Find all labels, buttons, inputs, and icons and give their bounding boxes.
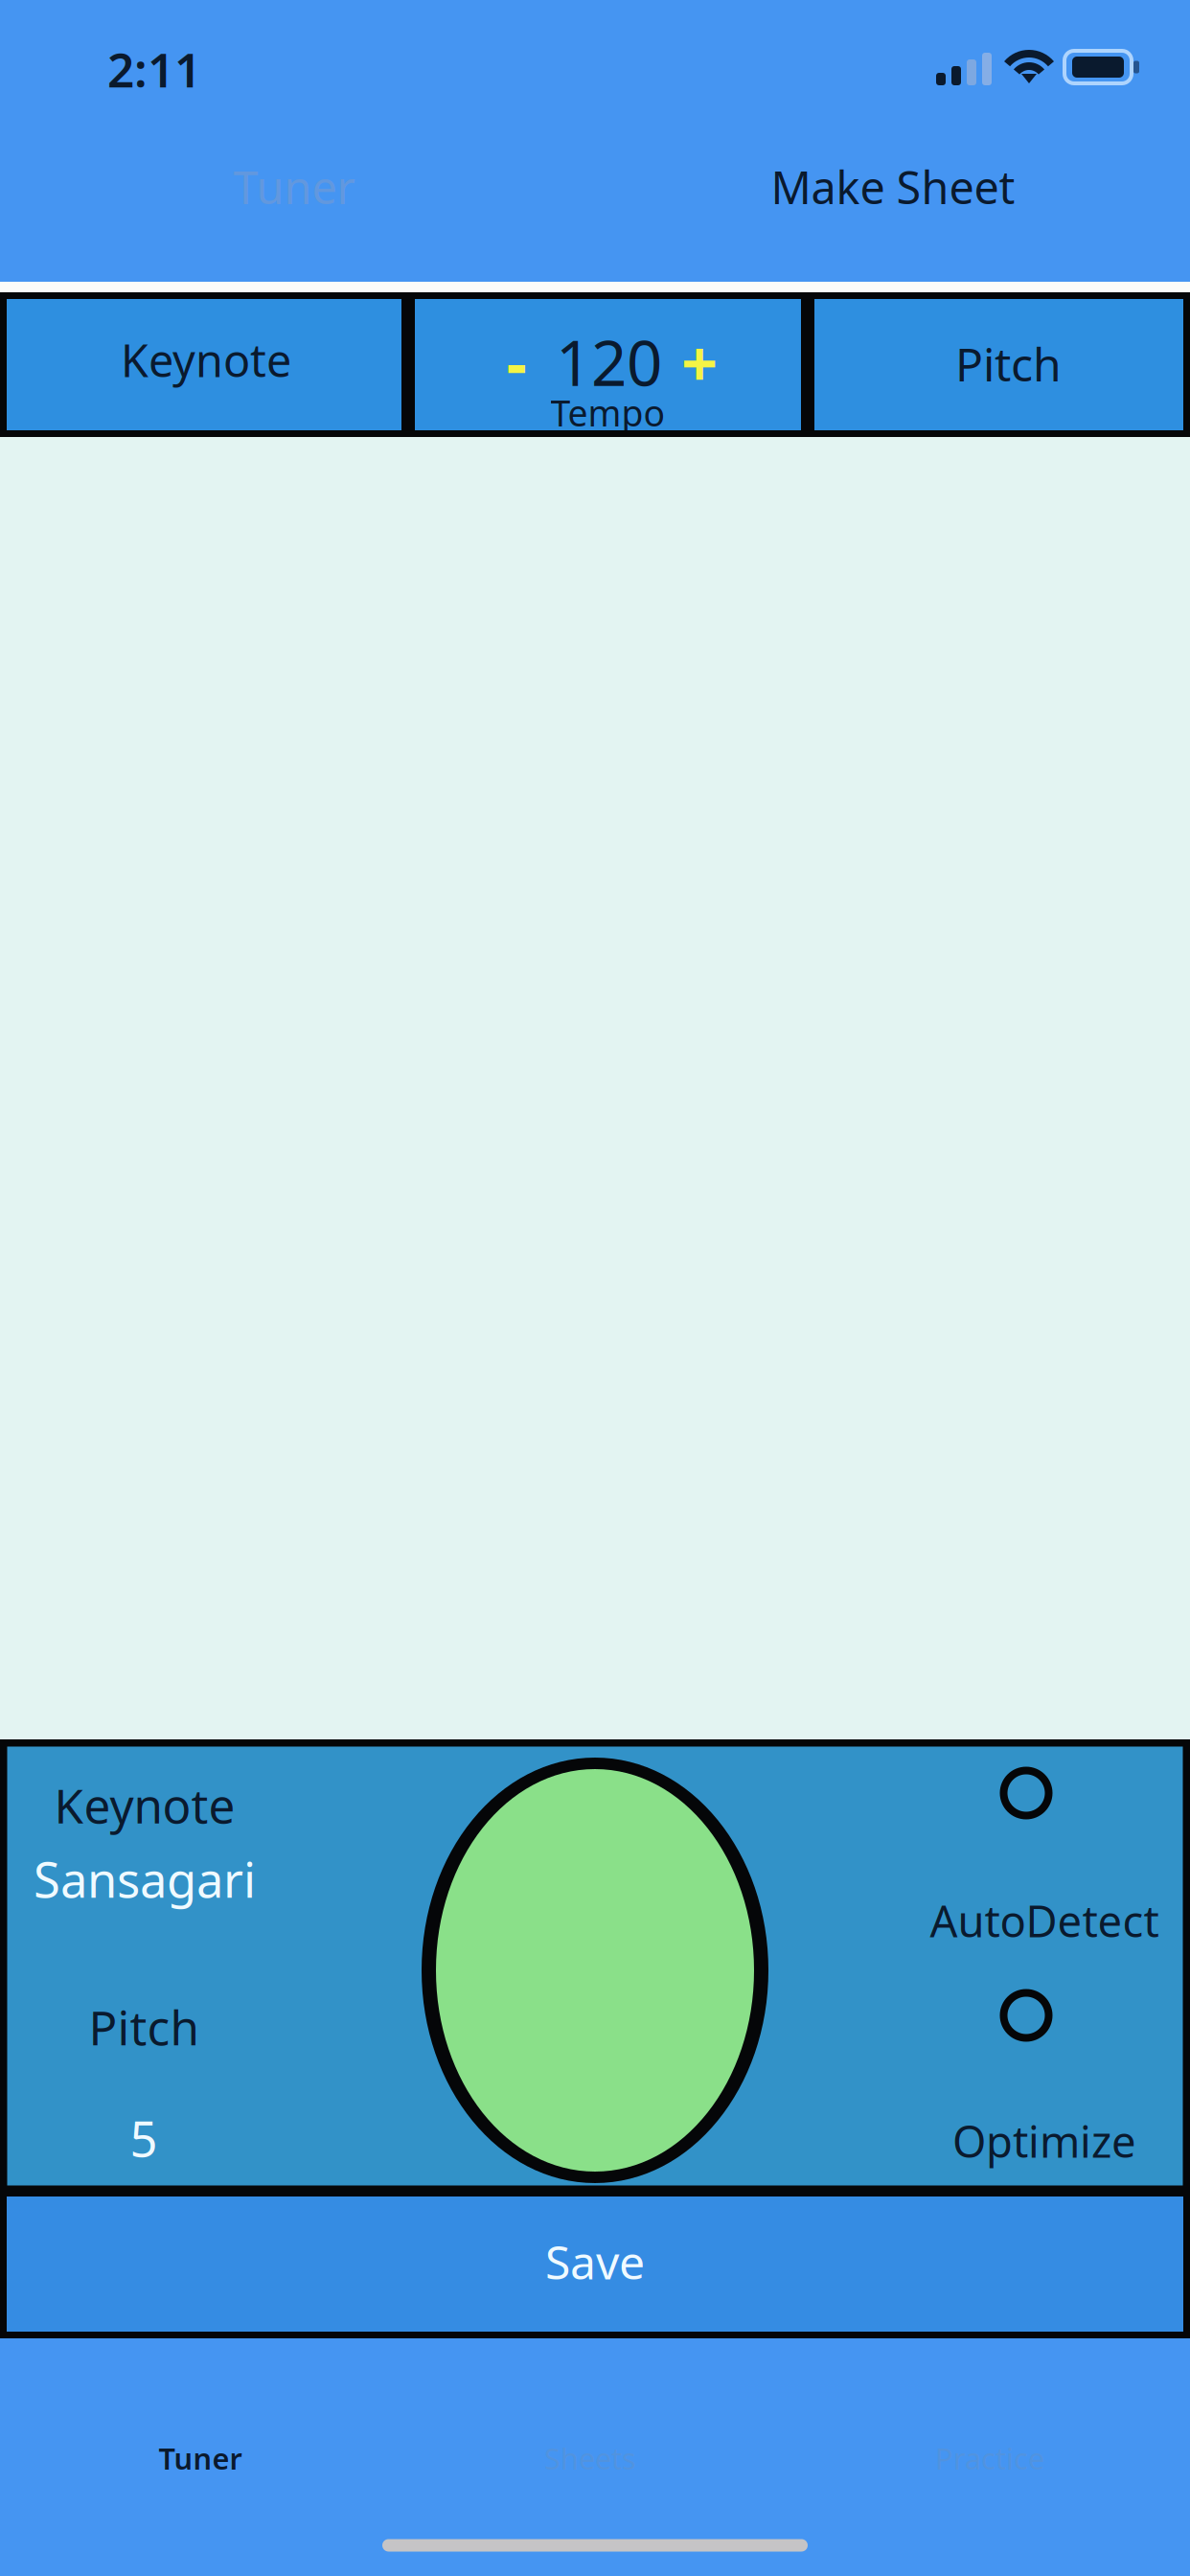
staticText: Pitch: [89, 1995, 199, 2058]
button[interactable]: AutoDetect toggle: [969, 1759, 1084, 1827]
button[interactable]: Pitch: [0, 2000, 291, 2165]
staticText: Save: [545, 2231, 645, 2292]
staticText: Keynote: [121, 330, 291, 390]
staticText: Pitch: [955, 333, 1062, 394]
staticText: Tuner: [233, 157, 355, 217]
button[interactable]: Tuner: [57, 2412, 344, 2504]
button[interactable]: Keynote: [0, 292, 408, 437]
staticText: +: [681, 319, 718, 404]
staticText: Keynote: [54, 1774, 235, 1836]
staticText: AutoDetect: [930, 1892, 1159, 1949]
button[interactable]: Optimize toggle: [969, 1982, 1084, 2049]
staticText: Make Sheet: [771, 157, 1015, 217]
button[interactable]: -: [408, 292, 808, 437]
staticText: 2:11: [107, 38, 201, 100]
button[interactable]: Pitch: [808, 292, 1190, 437]
staticText: Sheets: [544, 2439, 636, 2478]
button[interactable]: Keynote: [0, 1778, 291, 1906]
staticText: -: [506, 319, 526, 404]
staticText: Practice: [935, 2439, 1044, 2478]
staticText: Tempo: [550, 389, 665, 436]
staticText: Sansagari: [34, 1847, 256, 1911]
staticText: Optimize: [952, 2112, 1136, 2170]
button[interactable]: Make Sheet: [730, 147, 1056, 227]
button[interactable]: Tuner: [170, 147, 419, 227]
staticText: 120: [556, 320, 662, 403]
staticText: 5: [130, 2106, 158, 2170]
button[interactable]: Save: [0, 2193, 1190, 2338]
staticText: Tuner: [159, 2439, 242, 2478]
